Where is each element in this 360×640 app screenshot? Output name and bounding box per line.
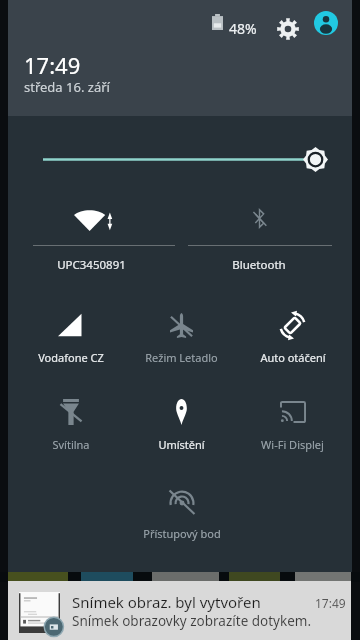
button[interactable]: Settings: [270, 11, 306, 47]
staticText: Snímek obraz. byl vytvořen: [72, 592, 261, 612]
staticText: 17:49: [315, 595, 346, 611]
staticText: 48%: [229, 19, 257, 38]
staticText: Auto otáčení: [260, 350, 326, 365]
button[interactable]: UPC3450891: [5, 185, 177, 283]
button[interactable]: User profile: [314, 11, 352, 49]
button[interactable]: Brightness: [8, 116, 352, 176]
staticText: 17:49: [24, 50, 81, 80]
staticText: Přístupový bod: [143, 526, 221, 541]
button[interactable]: Přístupový bod: [126, 475, 237, 555]
button[interactable]: Wi-Fi Displej: [237, 386, 348, 466]
staticText: UPC3450891: [57, 257, 126, 273]
staticText: Svítilna: [52, 437, 90, 452]
button[interactable]: Režim Letadlo: [126, 299, 237, 379]
staticText: středa 16. září: [24, 78, 110, 96]
staticText: Bluetooth: [232, 257, 286, 273]
button[interactable]: Auto otáčení: [237, 299, 348, 379]
button[interactable]: Snímek obraz. byl vytvořen: [8, 581, 351, 640]
staticText: Vodafone CZ: [38, 350, 104, 365]
button[interactable]: Vodafone CZ: [15, 299, 126, 379]
staticText: Umístění: [158, 437, 205, 452]
button[interactable]: Bluetooth: [173, 185, 345, 283]
button[interactable]: Svítilna: [15, 386, 126, 466]
staticText: Wi-Fi Displej: [261, 437, 324, 452]
button[interactable]: Umístění: [126, 386, 237, 466]
staticText: Snímek obrazovky zobrazíte dotykem.: [72, 612, 312, 630]
staticText: Režim Letadlo: [145, 350, 218, 365]
